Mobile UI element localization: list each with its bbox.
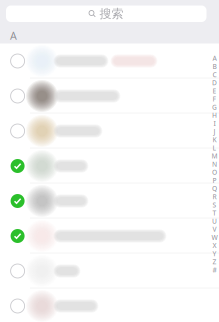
staticText: M xyxy=(211,151,217,160)
staticText: C xyxy=(212,70,216,79)
staticText: U xyxy=(212,217,217,225)
button[interactable]: Jump to W xyxy=(209,233,219,241)
button[interactable]: Jump to J xyxy=(209,127,219,136)
staticText: B xyxy=(212,62,216,71)
staticText: D xyxy=(212,78,217,87)
staticText: X xyxy=(212,241,216,250)
button[interactable]: Jump to N xyxy=(209,160,219,168)
button[interactable]: Jump to B xyxy=(209,62,219,70)
button[interactable]: Jump to M xyxy=(209,152,219,160)
button[interactable]: Jump to L xyxy=(209,144,219,152)
staticText: A xyxy=(212,54,216,63)
button[interactable]: Jump to O xyxy=(209,168,219,176)
staticText: Q xyxy=(212,184,217,193)
button[interactable]: 搜索 xyxy=(6,5,206,22)
staticText: J xyxy=(213,127,215,136)
button[interactable]: Jump to Y xyxy=(209,250,219,258)
staticText: W xyxy=(211,233,217,242)
button[interactable]: Jump to D xyxy=(209,79,219,87)
button[interactable] xyxy=(0,43,219,78)
button[interactable] xyxy=(0,78,219,113)
staticText: T xyxy=(212,208,216,217)
button[interactable]: Jump to C xyxy=(209,70,219,79)
staticText: R xyxy=(212,192,216,201)
staticText: P xyxy=(212,176,216,185)
staticText: I xyxy=(213,119,215,128)
button[interactable]: Jump to Q xyxy=(209,184,219,192)
button[interactable] xyxy=(0,253,219,288)
button[interactable]: Jump to V xyxy=(209,225,219,233)
button[interactable] xyxy=(0,288,219,322)
button[interactable]: Jump to S xyxy=(209,201,219,209)
button[interactable]: Jump to I xyxy=(209,119,219,127)
button[interactable]: Jump to K xyxy=(209,136,219,144)
button[interactable] xyxy=(0,183,219,218)
button[interactable]: Jump to # xyxy=(209,266,219,274)
staticText: Z xyxy=(212,257,216,266)
staticText: # xyxy=(212,265,216,274)
button[interactable]: Jump to X xyxy=(209,241,219,249)
button[interactable]: Jump to A xyxy=(209,54,219,62)
button[interactable]: Jump to G xyxy=(209,103,219,111)
staticText: E xyxy=(212,86,216,95)
button[interactable] xyxy=(0,148,219,183)
staticText: V xyxy=(212,225,216,234)
button[interactable]: Jump to P xyxy=(209,176,219,184)
staticText: L xyxy=(212,143,216,152)
button[interactable] xyxy=(0,218,219,253)
staticText: A xyxy=(10,28,17,43)
staticText: G xyxy=(212,103,217,112)
button[interactable]: Jump to H xyxy=(209,111,219,119)
staticText: N xyxy=(212,160,217,169)
staticText: H xyxy=(212,111,217,120)
staticText: F xyxy=(212,94,216,103)
staticText: O xyxy=(212,168,217,177)
staticText: S xyxy=(212,200,216,209)
staticText: K xyxy=(212,135,216,144)
button[interactable] xyxy=(0,113,219,148)
button[interactable]: Jump to Z xyxy=(209,258,219,266)
button[interactable]: Jump to F xyxy=(209,95,219,103)
staticText: Y xyxy=(212,249,216,258)
button[interactable]: Jump to T xyxy=(209,209,219,217)
button[interactable]: Jump to U xyxy=(209,217,219,225)
button[interactable]: Jump to E xyxy=(209,87,219,95)
button[interactable]: Jump to R xyxy=(209,193,219,201)
staticText: 搜索 xyxy=(99,6,123,21)
